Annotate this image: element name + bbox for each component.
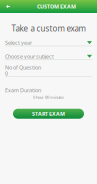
staticText: Exam Duration (5, 87, 41, 94)
staticText: CUSTOM EXAM (37, 3, 76, 10)
staticText: Take a custom exam (11, 23, 85, 34)
staticText: Select year (5, 39, 32, 46)
button[interactable]: Back (0, 0, 16, 13)
staticText: START EXAM (32, 110, 65, 117)
staticText: No of Question (5, 64, 41, 71)
staticText: 0 (5, 70, 8, 77)
staticText: Choose your subject (5, 53, 54, 60)
staticText: 0 hour 00 minutes (33, 95, 64, 100)
button[interactable]: Choose your subject (5, 53, 92, 60)
button[interactable]: Select year (5, 40, 92, 46)
button[interactable]: START EXAM (13, 109, 84, 119)
